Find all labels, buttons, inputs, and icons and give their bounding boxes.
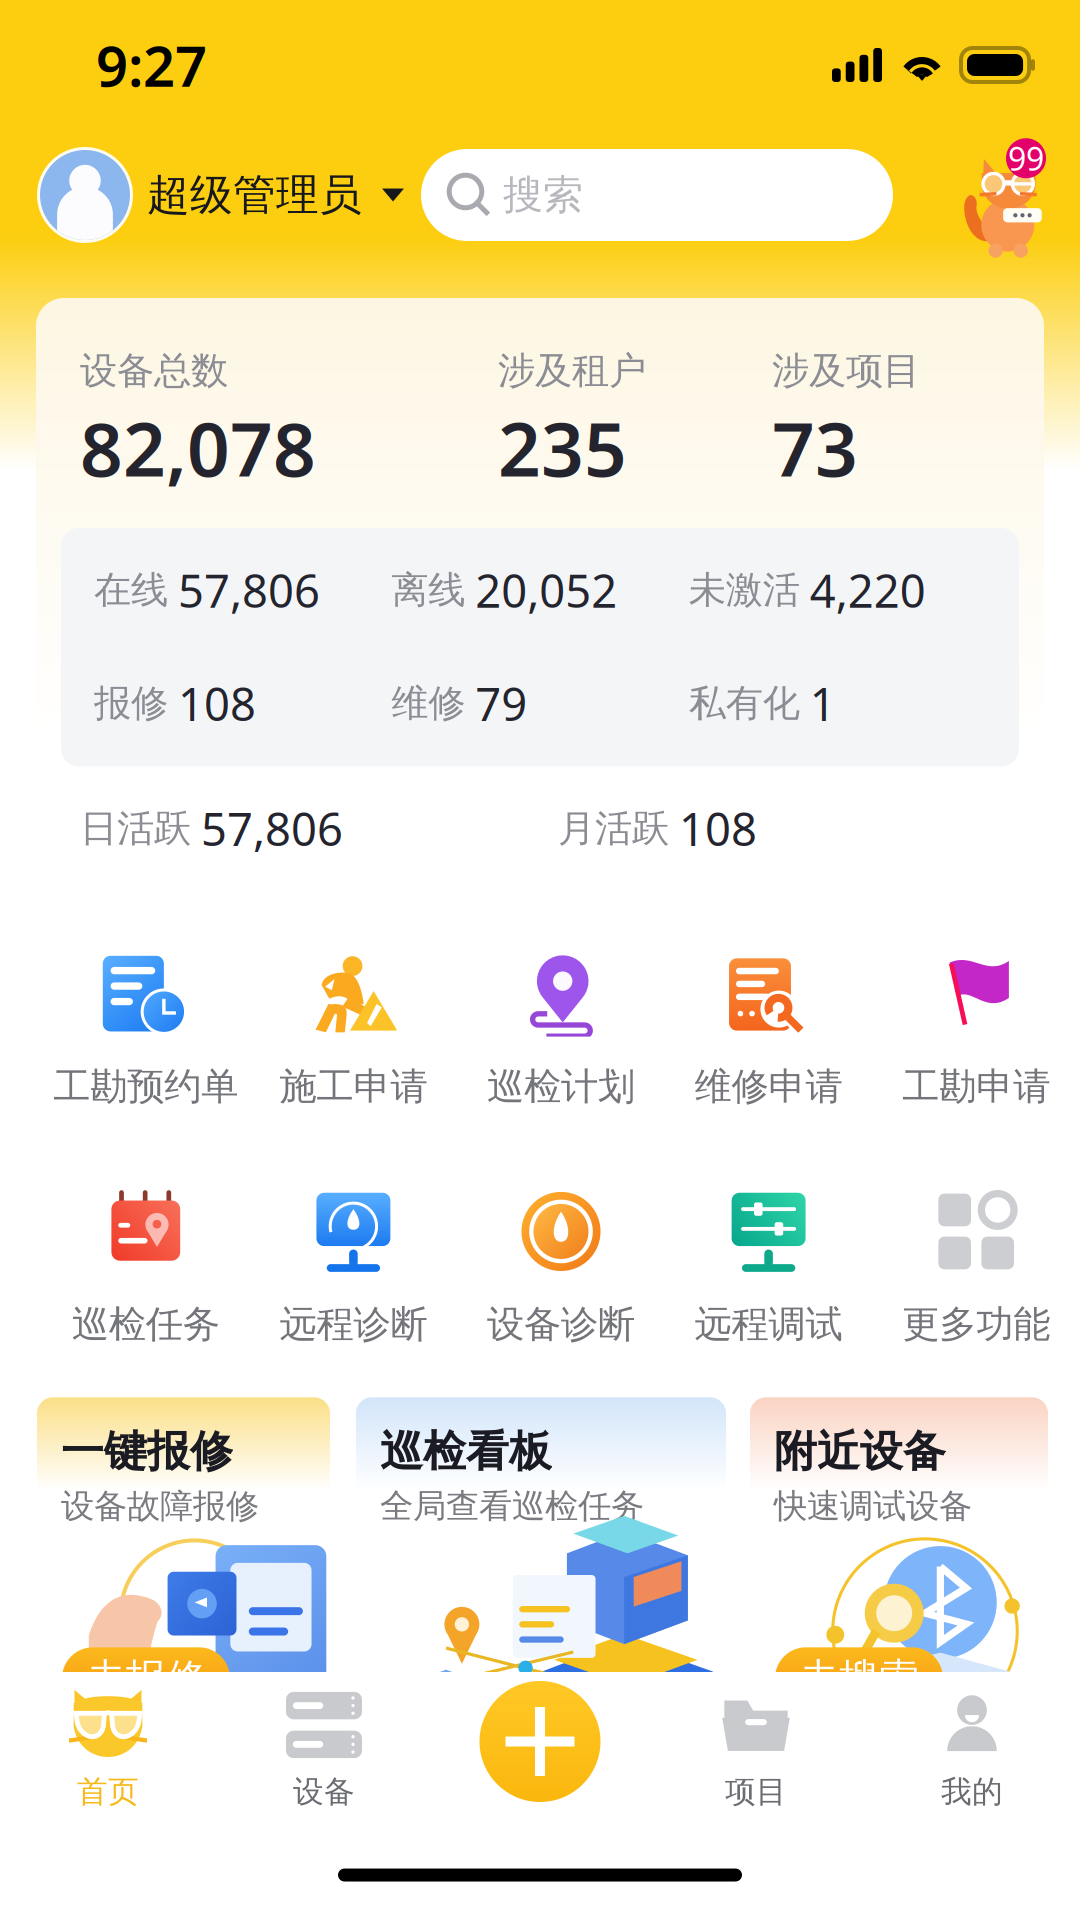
button[interactable]: 工勘预约单 bbox=[42, 951, 250, 1109]
staticText: 涉及租户 bbox=[498, 348, 646, 394]
staticText: 一键报修 bbox=[61, 1425, 233, 1478]
staticText: 超级管理员 bbox=[147, 169, 362, 221]
button[interactable]: 首页 bbox=[0, 1672, 216, 1852]
staticText: 快速调试设备 bbox=[774, 1486, 972, 1527]
staticText: 设备诊断 bbox=[487, 1301, 635, 1347]
button[interactable]: 客服消息 bbox=[944, 137, 1046, 253]
staticText: 去报修 bbox=[86, 1654, 206, 1703]
staticText: 设备 bbox=[293, 1773, 355, 1811]
button[interactable]: 设备 bbox=[216, 1672, 432, 1852]
staticText: 20,052 bbox=[475, 560, 617, 620]
staticText: 我的 bbox=[941, 1773, 1003, 1811]
staticText: 99 bbox=[1008, 137, 1044, 179]
staticText: 首页 bbox=[77, 1773, 139, 1811]
button[interactable]: 项目 bbox=[648, 1672, 864, 1852]
button[interactable]: 远程调试 bbox=[665, 1188, 872, 1347]
staticText: 235 bbox=[498, 398, 627, 497]
staticText: 搜索 bbox=[503, 170, 583, 219]
staticText: 57,806 bbox=[201, 798, 343, 859]
staticText: 79 bbox=[475, 673, 527, 733]
button[interactable]: 施工申请 bbox=[250, 951, 457, 1109]
staticText: 巡检看板 bbox=[380, 1425, 552, 1478]
staticText: 施工申请 bbox=[279, 1064, 427, 1109]
button[interactable]: 巡检任务 bbox=[42, 1188, 250, 1347]
button[interactable]: 一键报修 bbox=[37, 1397, 330, 1709]
staticText: 4,220 bbox=[810, 560, 926, 620]
staticText: 82,078 bbox=[80, 398, 316, 497]
staticText: 维修 bbox=[391, 680, 465, 726]
button[interactable]: 更多功能 bbox=[872, 1188, 1080, 1347]
staticText: 108 bbox=[679, 798, 757, 859]
button[interactable]: 新建 bbox=[479, 1681, 600, 1802]
staticText: 月活跃 bbox=[558, 806, 669, 851]
staticText: 未激活 bbox=[689, 567, 800, 613]
button[interactable]: 巡检计划 bbox=[457, 951, 665, 1109]
staticText: 报修 bbox=[94, 680, 168, 726]
button[interactable]: 附近设备 bbox=[750, 1397, 1048, 1709]
staticText: 维修申请 bbox=[695, 1064, 843, 1109]
staticText: 离线 bbox=[391, 567, 465, 613]
staticText: 更多功能 bbox=[902, 1301, 1050, 1347]
staticText: 工勘预约单 bbox=[53, 1064, 238, 1109]
button[interactable]: 我的 bbox=[864, 1672, 1080, 1852]
staticText: 私有化 bbox=[689, 680, 800, 726]
staticText: 项目 bbox=[725, 1773, 787, 1811]
button[interactable]: 工勘申请 bbox=[872, 951, 1080, 1109]
button[interactable]: 远程诊断 bbox=[250, 1188, 457, 1347]
staticText: 108 bbox=[178, 673, 256, 733]
staticText: 日活跃 bbox=[80, 806, 191, 851]
staticText: 附近设备 bbox=[774, 1425, 946, 1478]
staticText: 远程诊断 bbox=[279, 1301, 427, 1347]
staticText: 57,806 bbox=[178, 560, 320, 620]
staticText: 涉及项目 bbox=[772, 348, 920, 394]
staticText: 去搜索 bbox=[799, 1654, 919, 1703]
staticText: 远程调试 bbox=[695, 1301, 843, 1347]
staticText: 1 bbox=[810, 673, 836, 733]
staticText: 巡检任务 bbox=[72, 1301, 220, 1347]
button[interactable]: 设备诊断 bbox=[457, 1188, 665, 1347]
staticText: 9:27 bbox=[96, 28, 207, 102]
staticText: 73 bbox=[772, 398, 858, 497]
button[interactable]: 维修申请 bbox=[665, 951, 872, 1109]
staticText: 设备总数 bbox=[80, 348, 228, 394]
button[interactable]: 搜索 bbox=[421, 149, 893, 241]
staticText: 全局查看巡检任务 bbox=[380, 1486, 644, 1527]
staticText: 工勘申请 bbox=[902, 1064, 1050, 1109]
staticText: 设备故障报修 bbox=[61, 1486, 259, 1527]
staticText: 巡检计划 bbox=[487, 1064, 635, 1109]
button[interactable]: 巡检看板 bbox=[356, 1397, 726, 1709]
button[interactable]: 超级管理员 bbox=[0, 147, 404, 243]
staticText: 在线 bbox=[94, 567, 168, 613]
